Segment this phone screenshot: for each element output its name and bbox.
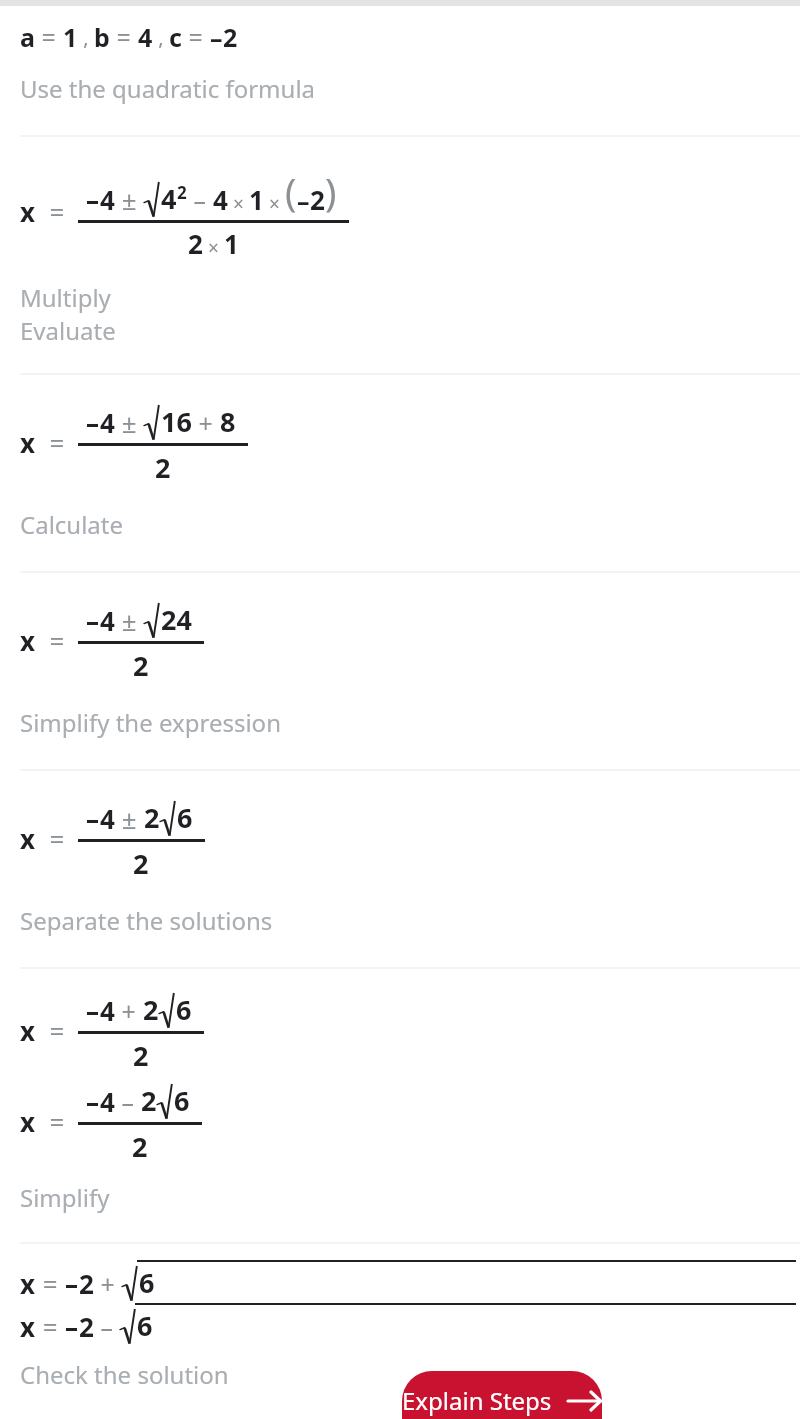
staticText: Explain Steps (402, 1384, 552, 1417)
staticText: , (153, 24, 169, 51)
staticText: x (20, 1309, 36, 1344)
staticText: 1 (249, 182, 264, 217)
staticText: 4 (161, 180, 177, 217)
staticText: 2 (310, 182, 325, 217)
staticText: Simplify the expression (20, 706, 281, 739)
staticText: = (36, 194, 78, 229)
staticText: 2 (177, 181, 187, 204)
staticText: – (86, 801, 100, 836)
staticText: – (297, 183, 310, 217)
staticText: + (192, 406, 220, 440)
staticText: b (94, 20, 110, 54)
staticText: ± (115, 603, 144, 638)
staticText: 2 (132, 1128, 148, 1165)
staticText: 2 (79, 1309, 94, 1344)
staticText: – (65, 1266, 79, 1301)
staticText: – (210, 20, 223, 54)
staticText: 8 (220, 403, 236, 440)
staticText: ) (325, 165, 337, 217)
staticText: – (86, 182, 100, 217)
staticText: 2 (144, 799, 160, 836)
staticText: x (20, 1104, 36, 1139)
staticText: 6 (174, 1082, 190, 1119)
staticText: – (86, 603, 100, 638)
staticText: × (264, 191, 285, 217)
staticText: 4 (138, 20, 153, 54)
staticText: 4 (100, 1084, 115, 1119)
staticText: x (20, 821, 36, 856)
staticText: = (182, 20, 210, 54)
staticText: = (36, 1309, 65, 1344)
staticText: Calculate (20, 508, 124, 541)
staticText: x (20, 425, 36, 460)
staticText: 2 (141, 1082, 157, 1119)
staticText: = (36, 1013, 78, 1048)
staticText: + (115, 994, 143, 1028)
staticText: 4 (100, 182, 115, 217)
staticText: = (36, 1266, 65, 1301)
staticText: c (169, 20, 182, 54)
button[interactable]: Explain Steps (402, 1371, 602, 1419)
staticText: = (35, 20, 63, 54)
staticText: × (228, 191, 249, 217)
staticText: 2 (133, 647, 149, 684)
staticText: – (187, 183, 213, 217)
staticText: – (86, 405, 100, 440)
staticText: ± (115, 182, 144, 217)
staticText: × (203, 235, 224, 261)
staticText: – (115, 1085, 141, 1119)
staticText: Check the solution (20, 1358, 229, 1391)
staticText: = (36, 1104, 78, 1139)
staticText: Simplify (20, 1181, 110, 1214)
staticText: a (20, 20, 35, 54)
staticText: = (110, 20, 138, 54)
staticText: 2 (223, 20, 238, 54)
staticText: 2 (188, 226, 203, 261)
other: Explain Steps (568, 1389, 602, 1413)
staticText: 24 (161, 601, 192, 638)
staticText: 1 (224, 226, 239, 261)
staticText: 1 (63, 20, 78, 54)
staticText: = (36, 623, 78, 658)
staticText: Use the quadratic formula (20, 72, 316, 105)
staticText: 4 (100, 801, 115, 836)
staticText: = (36, 425, 78, 460)
staticText: 6 (176, 991, 192, 1028)
staticText: , (78, 24, 94, 51)
staticText: 2 (79, 1266, 94, 1301)
staticText: ( (285, 165, 297, 217)
staticText: 2 (133, 845, 149, 882)
staticText: 4 (100, 603, 115, 638)
staticText: x (20, 1013, 36, 1048)
staticText: x (20, 623, 36, 658)
staticText: 4 (100, 405, 115, 440)
staticText: – (65, 1309, 79, 1344)
staticText: 6 (139, 1264, 155, 1301)
staticText: Evaluate (20, 314, 116, 347)
staticText: 6 (177, 799, 193, 836)
staticText: – (94, 1310, 120, 1344)
staticText: Separate the solutions (20, 904, 273, 937)
staticText: + (94, 1267, 122, 1301)
staticText: x (20, 194, 36, 229)
staticText: 6 (137, 1307, 153, 1344)
staticText: Multiply (20, 281, 111, 314)
staticText: 4 (213, 182, 228, 217)
staticText: – (86, 993, 100, 1028)
staticText: x (20, 1266, 36, 1301)
staticText: 16 (161, 403, 192, 440)
staticText: 4 (100, 993, 115, 1028)
staticText: 2 (143, 991, 159, 1028)
staticText: = (36, 821, 78, 856)
staticText: – (86, 1084, 100, 1119)
staticText: ± (115, 405, 144, 440)
staticText: ± (115, 801, 144, 836)
staticText: 2 (133, 1037, 149, 1074)
staticText: 2 (155, 449, 171, 486)
